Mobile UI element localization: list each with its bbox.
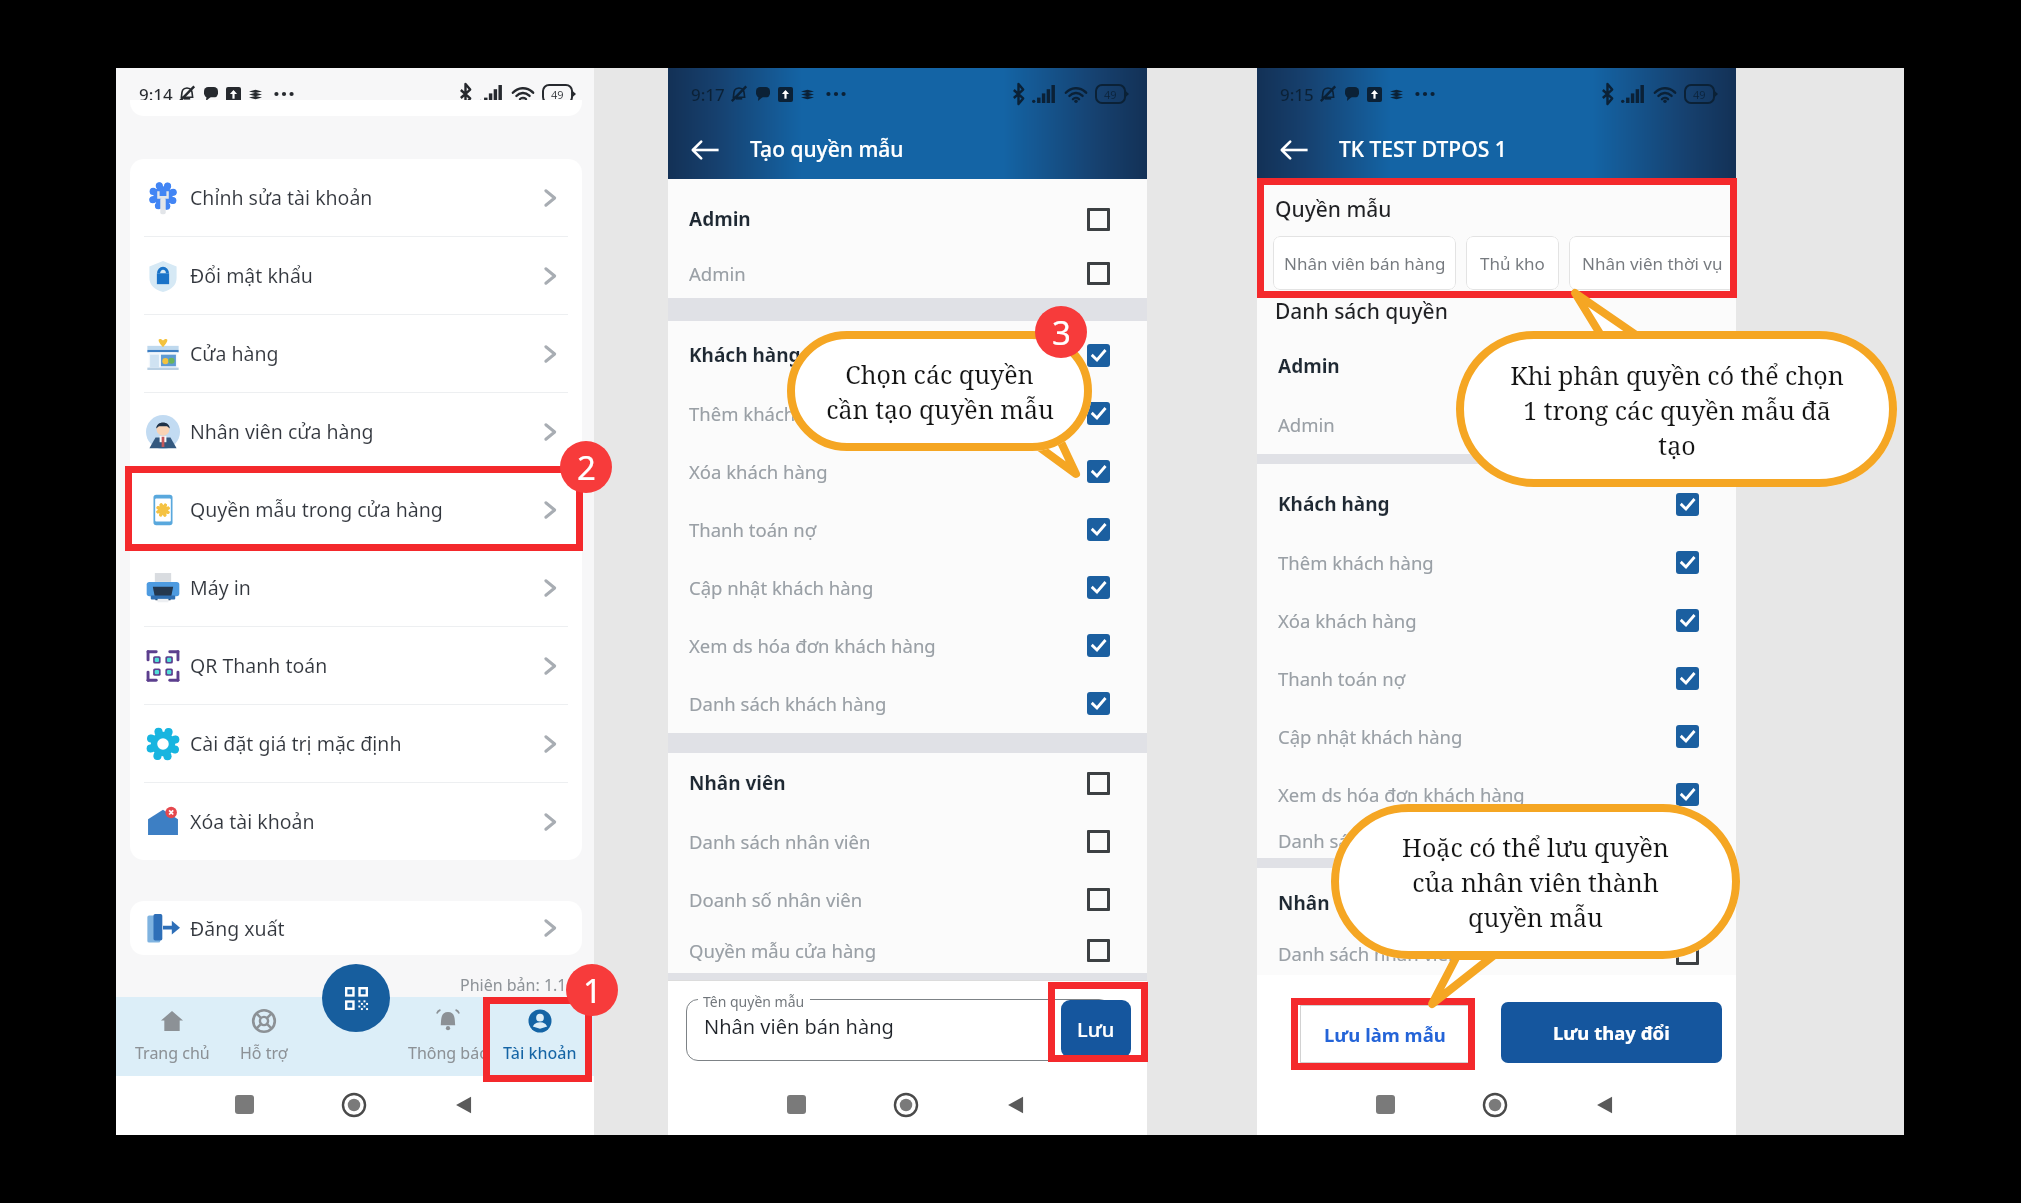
button[interactable]: Recent apps <box>235 1095 254 1114</box>
button[interactable]: Back <box>1594 1094 1616 1116</box>
button[interactable]: Back <box>1005 1094 1027 1116</box>
button[interactable]: Cập nhật khách hàng <box>668 558 1147 616</box>
staticText: Chỉnh sửa tài khoản <box>190 184 373 211</box>
button[interactable]: QR Thanh toán <box>130 627 582 704</box>
staticText: Thêm khách hàng <box>689 401 845 426</box>
button[interactable]: Admin <box>668 248 1147 298</box>
button[interactable]: Cài đặt giá trị mặc định <box>130 705 582 782</box>
staticText: Xóa tài khoản <box>190 808 315 835</box>
button[interactable]: Lưu làm mẫu <box>1300 1005 1470 1063</box>
staticText: Thêm khách hàng <box>1278 550 1434 575</box>
staticText: Danh sách khách hàng <box>1278 828 1476 853</box>
staticText: Danh sách nhân viên <box>1278 941 1460 966</box>
staticText: TK TEST DTPOS 1 <box>1339 135 1507 164</box>
button[interactable]: Nhân viên bán hàng <box>1273 236 1456 290</box>
button[interactable]: Hỗ trợ <box>209 997 319 1076</box>
staticText: Nhân viên bán hàng <box>704 1013 894 1040</box>
button[interactable]: Thông báo <box>393 997 503 1076</box>
staticText: 49 <box>551 87 564 102</box>
button[interactable]: Khách hàng <box>1257 475 1736 533</box>
staticText: 2 <box>577 445 596 490</box>
button[interactable]: Admin <box>1257 395 1736 453</box>
button[interactable]: Home <box>342 1093 366 1117</box>
button[interactable]: Back <box>453 1094 475 1116</box>
staticText: Cập nhật khách hàng <box>1278 724 1463 749</box>
button[interactable]: Máy in <box>130 549 582 626</box>
button[interactable]: Xem ds hóa đơn khách hàng <box>668 616 1147 674</box>
button[interactable]: Admin <box>1257 337 1736 395</box>
staticText: Nhân viên <box>689 770 786 796</box>
button[interactable]: Xóa khách hàng <box>1257 591 1736 649</box>
staticText: Xóa khách hàng <box>1278 608 1417 633</box>
button[interactable]: Xóa khách hàng <box>668 442 1147 500</box>
staticText: 49 <box>1693 87 1706 102</box>
staticText: của nhân viên thành <box>1412 865 1659 899</box>
staticText: Thủ kho <box>1480 252 1545 275</box>
staticText: Cửa hàng <box>190 340 279 367</box>
staticText: 9:14 <box>139 83 173 106</box>
staticText: 9:15 <box>1280 83 1314 106</box>
button[interactable]: Thanh toán nợ <box>1257 649 1736 707</box>
staticText: Lưu làm mẫu <box>1324 1022 1446 1047</box>
button[interactable]: Danh sách khách hàng <box>1257 823 1736 858</box>
staticText: Admin <box>689 261 746 286</box>
staticText: Admin <box>689 206 751 232</box>
button[interactable]: Admin <box>668 190 1147 248</box>
staticText: Danh sách quyền <box>1275 297 1448 326</box>
staticText: Thanh toán nợ <box>689 517 817 542</box>
staticText: Phiên bản: 1.1.1 <box>460 974 580 996</box>
button[interactable]: Danh sách khách hàng <box>668 674 1147 732</box>
button[interactable]: Thanh toán nợ <box>668 500 1147 558</box>
staticText: Máy in <box>190 574 251 601</box>
button[interactable]: Home <box>894 1093 918 1117</box>
button[interactable]: Trang chủ <box>117 997 227 1076</box>
button[interactable]: Nhân viên <box>1257 874 1736 932</box>
button[interactable]: Back <box>688 132 724 168</box>
staticText: Xem ds hóa đơn khách hàng <box>689 633 936 658</box>
staticText: Admin <box>1278 412 1335 437</box>
button[interactable]: Đổi mật khẩu <box>130 237 582 314</box>
button[interactable]: Xem ds hóa đơn khách hàng <box>1257 765 1736 823</box>
staticText: Cài đặt giá trị mặc định <box>190 730 402 757</box>
button[interactable]: Danh sách nhân viên <box>1257 932 1736 975</box>
staticText: 9:17 <box>691 83 725 106</box>
button[interactable]: Quyền mẫu cửa hàng <box>668 928 1147 973</box>
button[interactable]: Thủ kho <box>1466 236 1559 290</box>
button[interactable]: Thêm khách hàng <box>668 384 1147 442</box>
staticText: Đăng xuất <box>190 915 285 942</box>
button[interactable]: Nhân viên cửa hàng <box>130 393 582 470</box>
staticText: 3 <box>1052 310 1071 355</box>
staticText: Quyền mẫu trong cửa hàng <box>190 496 443 523</box>
button[interactable]: Xóa tài khoản <box>130 783 582 860</box>
button[interactable]: Cập nhật khách hàng <box>1257 707 1736 765</box>
staticText: Khách hàng <box>1278 491 1390 517</box>
staticText: Danh sách khách hàng <box>689 691 887 716</box>
button[interactable]: Danh sách nhân viên <box>668 812 1147 870</box>
button[interactable]: Lưu thay đổi <box>1501 1002 1722 1063</box>
button[interactable]: Thêm khách hàng <box>1257 533 1736 591</box>
button[interactable]: Đăng xuất <box>130 901 582 955</box>
staticText: Nhân viên bán hàng <box>1284 252 1446 275</box>
button[interactable]: Recent apps <box>787 1095 806 1114</box>
button[interactable]: Recent apps <box>1376 1095 1395 1114</box>
button[interactable]: Home <box>1483 1093 1507 1117</box>
staticText: Admin <box>1278 353 1340 379</box>
button[interactable]: Back <box>1277 132 1313 168</box>
staticText: Tài khoản <box>503 1042 577 1064</box>
button[interactable]: Quyền mẫu trong cửa hàng <box>130 471 582 548</box>
button[interactable]: Quét mã QR <box>322 964 390 1032</box>
staticText: Trang chủ <box>135 1042 210 1064</box>
staticText: Hỗ trợ <box>240 1042 288 1064</box>
button[interactable]: Nhân viên <box>668 754 1147 812</box>
staticText: QR Thanh toán <box>190 652 328 679</box>
button[interactable]: Cửa hàng <box>130 315 582 392</box>
button[interactable]: Doanh số nhân viên <box>668 870 1147 928</box>
button[interactable]: Lưu <box>1061 1000 1131 1058</box>
staticText: Danh sách nhân viên <box>689 829 871 854</box>
staticText: Chọn các quyền <box>845 357 1034 391</box>
button[interactable]: Chỉnh sửa tài khoản <box>130 159 582 236</box>
button[interactable]: Nhân viên thời vụ <box>1569 236 1736 290</box>
button[interactable]: Tài khoản <box>485 997 595 1076</box>
staticText: Thông báo <box>408 1042 489 1064</box>
button[interactable]: Khách hàng <box>668 326 1147 384</box>
